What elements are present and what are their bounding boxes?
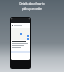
staticText: Details about how to [19, 2, 45, 6]
staticText: pick up an order [22, 7, 42, 11]
